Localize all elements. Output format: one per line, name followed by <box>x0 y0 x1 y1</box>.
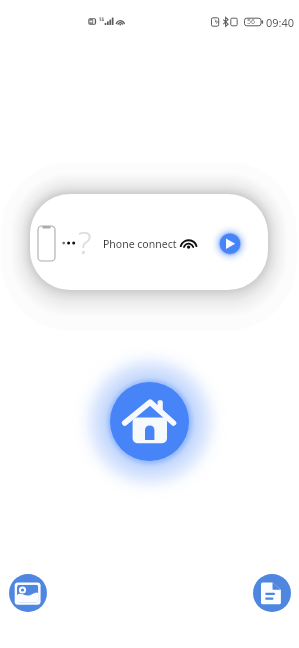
staticText: ? <box>78 220 92 264</box>
staticText: 09:40 <box>266 15 295 30</box>
button[interactable]: Gallery <box>9 574 47 612</box>
staticText: Phone connect <box>103 237 177 251</box>
staticText: 56 <box>247 17 256 27</box>
button[interactable]: Home <box>110 382 189 461</box>
button[interactable]: Document <box>253 574 291 612</box>
button[interactable]: ? <box>30 194 268 290</box>
